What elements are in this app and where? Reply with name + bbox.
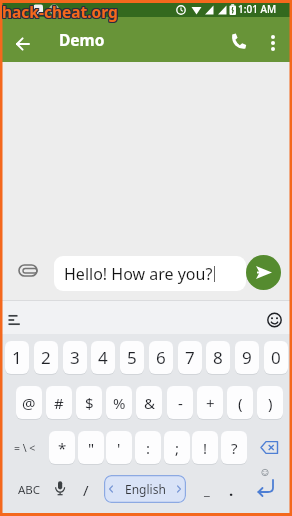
staticText: ) — [268, 393, 273, 413]
staticText: 6 — [156, 346, 166, 369]
staticText: " — [88, 438, 95, 458]
button[interactable]: 1 — [5, 341, 29, 374]
staticText: 4 — [98, 346, 108, 369]
button[interactable] — [226, 30, 252, 56]
staticText: : — [146, 438, 151, 458]
staticText: Hello! How are you? — [64, 263, 213, 285]
staticText: $ — [85, 393, 94, 413]
button[interactable]: ( — [227, 386, 253, 419]
button[interactable]: ABC — [10, 476, 48, 504]
staticText: + — [206, 393, 215, 413]
staticText: _ — [204, 481, 210, 499]
staticText: ' — [117, 438, 121, 458]
button[interactable]: _ — [196, 476, 218, 504]
button[interactable]: 9 — [235, 341, 259, 374]
button[interactable]: 5 — [120, 341, 144, 374]
button[interactable]: 8 — [206, 341, 230, 374]
staticText: 7 — [185, 346, 195, 369]
button[interactable] — [2, 307, 28, 331]
staticText: . — [229, 480, 234, 500]
button[interactable]: ! — [192, 431, 218, 464]
button[interactable]: - — [167, 386, 193, 419]
staticText: 0 — [271, 346, 281, 369]
staticText: * — [58, 438, 67, 458]
button[interactable] — [255, 434, 285, 461]
staticText: 8 — [213, 346, 223, 369]
button[interactable] — [250, 468, 284, 504]
staticText: % — [113, 393, 126, 413]
button[interactable]: & — [136, 386, 162, 419]
button[interactable]: $ — [76, 386, 102, 419]
staticText: 5 — [127, 346, 137, 369]
button[interactable]: 4 — [91, 341, 115, 374]
button[interactable]: 6 — [149, 341, 173, 374]
button[interactable] — [50, 476, 70, 504]
button[interactable]: 7 — [178, 341, 202, 374]
staticText: hack-cheat.org — [3, 1, 119, 22]
staticText: ( — [238, 393, 243, 413]
staticText: hack-cheat.org — [1, 1, 117, 22]
staticText: & — [144, 393, 155, 413]
button[interactable]: ' — [106, 431, 132, 464]
button[interactable] — [246, 255, 281, 290]
staticText: # — [54, 393, 64, 413]
button[interactable]: English — [104, 475, 186, 503]
staticText: hack-cheat.org — [2, 0, 118, 21]
button[interactable]: + — [197, 386, 223, 419]
button[interactable]: ) — [257, 386, 283, 419]
button[interactable]: 2 — [34, 341, 58, 374]
staticText: / — [83, 480, 89, 500]
staticText: ; — [175, 438, 180, 458]
staticText: hack-cheat.org — [3, 0, 119, 21]
button[interactable] — [263, 308, 287, 332]
staticText: 2 — [41, 346, 51, 369]
button[interactable]: 3 — [63, 341, 87, 374]
button[interactable]: / — [76, 476, 96, 504]
staticText: hack-cheat.org — [1, 0, 117, 21]
button[interactable]: ; — [164, 431, 190, 464]
button[interactable]: Hello! How are you? — [54, 256, 246, 291]
staticText: 9 — [242, 346, 252, 369]
button[interactable]: @ — [16, 386, 42, 419]
staticText: ! — [203, 438, 208, 458]
button[interactable] — [8, 30, 38, 58]
button[interactable]: = \ < — [6, 431, 44, 464]
staticText: hack-cheat.org — [2, 1, 118, 22]
button[interactable] — [263, 30, 283, 56]
button[interactable] — [12, 260, 46, 284]
button[interactable]: % — [106, 386, 132, 419]
staticText: 3 — [70, 346, 80, 369]
button[interactable]: . — [222, 476, 240, 504]
button[interactable]: : — [135, 431, 161, 464]
button[interactable]: 0 — [264, 341, 288, 374]
staticText: Demo — [59, 29, 105, 50]
staticText: hack-cheat.org — [3, 2, 119, 23]
button[interactable]: " — [78, 431, 104, 464]
staticText: hack-cheat.org — [2, 2, 118, 23]
button[interactable]: * — [49, 431, 75, 464]
staticText: ? — [231, 438, 238, 458]
staticText: ABC — [18, 482, 41, 498]
staticText: hack-cheat.org — [1, 2, 117, 23]
button[interactable]: ? — [221, 431, 247, 464]
staticText: @ — [22, 393, 36, 413]
staticText: 1:01 AM — [238, 2, 277, 16]
staticText: 1 — [12, 346, 22, 369]
staticText: = \ < — [14, 441, 36, 455]
staticText: - — [178, 393, 183, 413]
button[interactable]: # — [46, 386, 72, 419]
staticText: English — [125, 481, 166, 497]
